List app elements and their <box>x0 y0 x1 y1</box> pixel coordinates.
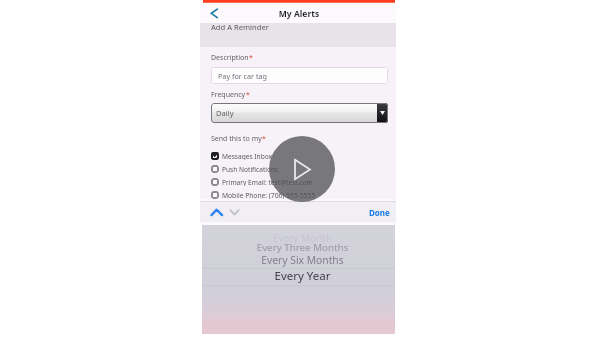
button[interactable]: Primary Email: test@test.com <box>211 178 313 186</box>
staticText: Mobile Phone: (706) 555-5555 <box>222 191 316 199</box>
staticText: Every Year <box>206 268 399 284</box>
staticText: Every Three Months <box>206 241 399 254</box>
staticText: * <box>246 90 250 100</box>
staticText: Done <box>369 207 390 218</box>
button[interactable]: Mobile Phone: (706) 555-5555 <box>211 191 316 199</box>
button[interactable]: Done <box>369 207 390 218</box>
button[interactable]: Messages Inbox <box>211 152 273 160</box>
staticText: Pay for car tag <box>218 71 267 81</box>
button[interactable]: Daily <box>211 103 388 123</box>
staticText: My Alerts <box>201 8 397 20</box>
staticText: * <box>262 134 266 144</box>
staticText: Primary Email: test@test.com <box>222 178 313 186</box>
button[interactable]: Previous field <box>209 206 224 217</box>
staticText: Send this to my <box>211 134 262 144</box>
button[interactable]: Next field <box>228 206 242 217</box>
button[interactable]: Play video <box>269 136 335 202</box>
staticText: Description <box>211 53 249 63</box>
staticText: Every Six Months <box>206 253 399 267</box>
staticText: Push Notifications <box>222 165 279 173</box>
staticText: Every Month <box>206 231 399 245</box>
staticText: Add A Reminder <box>211 22 269 32</box>
staticText: Messages Inbox <box>222 152 273 160</box>
button[interactable]: Back <box>206 4 222 22</box>
staticText: Daily <box>216 108 234 118</box>
button[interactable]: Push Notifications <box>211 165 279 173</box>
staticText: * <box>249 53 253 63</box>
staticText: Frequency <box>211 90 246 100</box>
button[interactable]: Pay for car tag <box>211 67 388 84</box>
